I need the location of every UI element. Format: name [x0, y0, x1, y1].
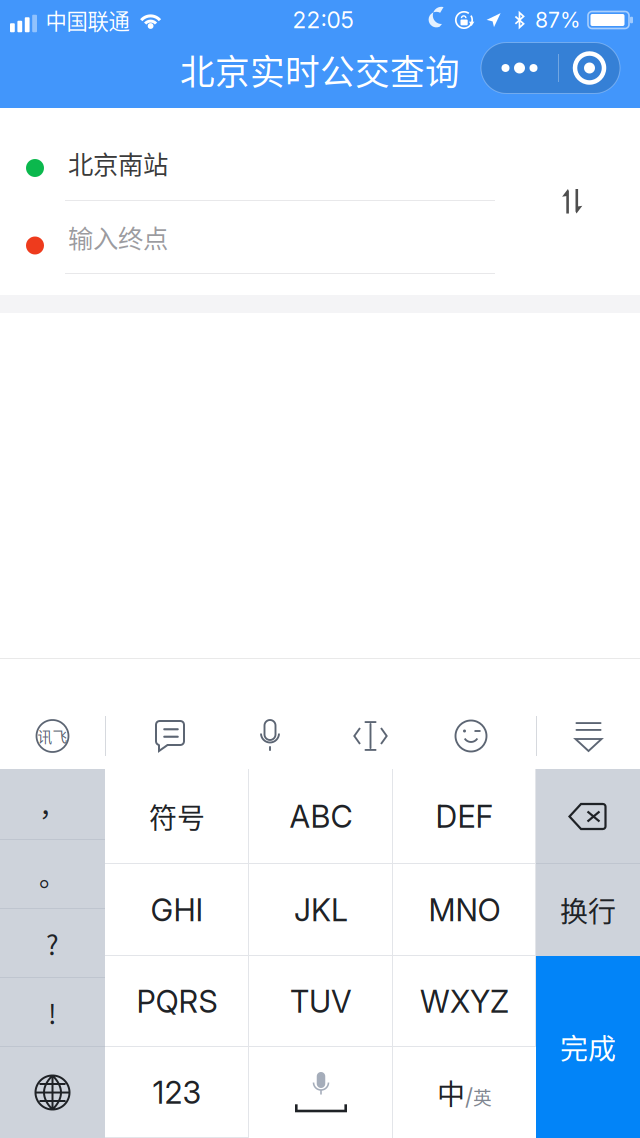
staticText: PQRS — [136, 983, 217, 1020]
staticText: ， — [39, 785, 66, 824]
staticText: DEF — [435, 798, 493, 835]
staticText: 符号 — [149, 796, 205, 837]
button[interactable]: DEF — [393, 769, 536, 864]
button[interactable]: 换行 — [536, 864, 640, 956]
button[interactable]: MNO — [393, 864, 536, 956]
button[interactable]: GHI — [105, 864, 249, 956]
button[interactable]: Delete — [536, 769, 640, 864]
staticText: WXYZ — [420, 983, 509, 1020]
button[interactable]: ABC — [249, 769, 393, 864]
staticText: ABC — [289, 798, 352, 835]
staticText: 中国联通 — [46, 5, 130, 35]
staticText: 中 — [437, 1072, 465, 1113]
button[interactable]: ! — [0, 978, 105, 1047]
button[interactable]: Hide keyboard — [537, 703, 640, 769]
button[interactable]: Move cursor — [320, 703, 421, 769]
button[interactable]: Emoji — [421, 703, 521, 769]
button[interactable]: Switch keyboard — [0, 1047, 105, 1138]
button[interactable]: ? — [0, 909, 105, 978]
staticText: 22:05 — [292, 6, 353, 34]
button[interactable]: 北京南站 — [0, 108, 640, 200]
button[interactable]: PQRS — [105, 956, 249, 1047]
button[interactable]: Mini program menu — [481, 42, 620, 93]
button[interactable]: 输入终点 — [0, 201, 640, 273]
staticText: ? — [46, 924, 59, 963]
button[interactable]: 123 — [105, 1047, 249, 1138]
button[interactable]: JKL — [249, 864, 393, 956]
staticText: 北京实时公交查询 — [180, 45, 460, 95]
button[interactable]: Chinese English toggle — [393, 1047, 536, 1138]
staticText: 北京南站 — [68, 145, 168, 181]
staticText: 。 — [39, 855, 66, 894]
button[interactable]: 符号 — [105, 769, 249, 864]
staticText: 完成 — [560, 1027, 616, 1067]
staticText: 123 — [152, 1074, 201, 1111]
button[interactable]: Space, voice input — [249, 1047, 393, 1138]
button[interactable]: 完成 — [536, 956, 640, 1138]
staticText: 换行 — [560, 890, 616, 930]
staticText: 输入终点 — [68, 219, 168, 255]
staticText: 87% — [535, 7, 581, 33]
button[interactable]: iFlytek input method — [0, 703, 105, 769]
button[interactable]: Candidates — [120, 703, 220, 769]
button[interactable]: 。 — [0, 840, 105, 909]
staticText: MNO — [428, 891, 500, 928]
button[interactable]: Swap origin and destination — [526, 155, 618, 247]
button[interactable]: ， — [0, 769, 105, 840]
staticText: 讯飞 — [37, 725, 67, 747]
staticText: TUV — [290, 983, 352, 1020]
staticText: GHI — [150, 891, 203, 928]
staticText: ! — [48, 993, 57, 1032]
button[interactable]: Voice input — [220, 703, 320, 769]
staticText: / — [465, 1083, 473, 1110]
staticText: JKL — [294, 891, 348, 928]
staticText: 英 — [473, 1083, 492, 1110]
button[interactable]: WXYZ — [393, 956, 536, 1047]
button[interactable]: TUV — [249, 956, 393, 1047]
